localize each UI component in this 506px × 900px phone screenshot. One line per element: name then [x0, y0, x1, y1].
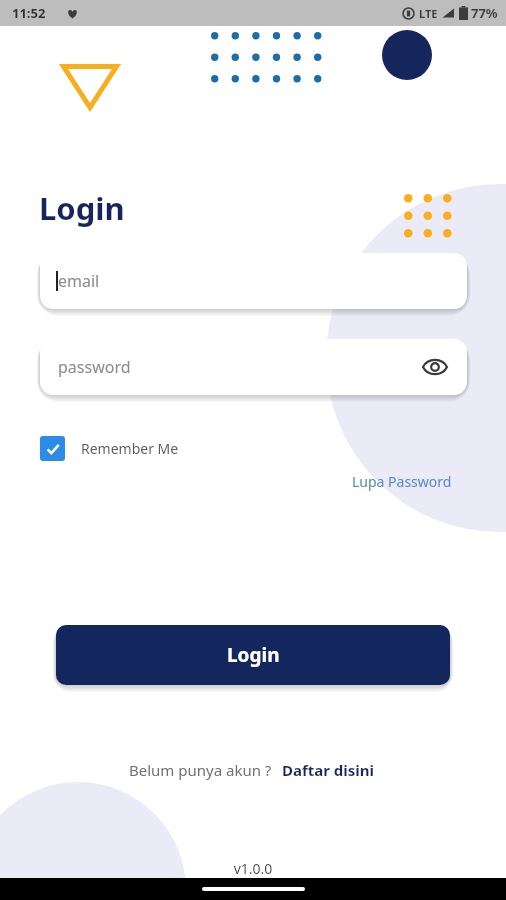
- button[interactable]: email: [40, 253, 467, 309]
- staticText: 11:52: [12, 4, 46, 22]
- staticText: LTE: [419, 6, 438, 21]
- staticText: Lupa Password: [352, 472, 452, 491]
- staticText: Login: [227, 642, 280, 668]
- button[interactable]: Remember Me: [38, 434, 181, 463]
- button[interactable]: password: [40, 339, 467, 395]
- staticText: Remember Me: [81, 439, 179, 458]
- button[interactable]: Daftar disini: [280, 758, 377, 782]
- staticText: password: [58, 356, 131, 378]
- button[interactable]: Lupa Password: [348, 469, 456, 494]
- staticText: email: [58, 270, 100, 292]
- staticText: Daftar disini: [282, 760, 375, 780]
- staticText: 77%: [471, 4, 498, 22]
- button[interactable]: Show password: [419, 351, 451, 383]
- button[interactable]: Login: [56, 625, 450, 685]
- staticText: Login: [39, 187, 125, 229]
- staticText: Belum punya akun ?: [129, 760, 272, 780]
- staticText: v1.0.0: [0, 859, 506, 878]
